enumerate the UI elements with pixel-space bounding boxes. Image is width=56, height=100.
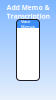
staticText: Transcription [6, 12, 49, 21]
staticText: Add Memo & [6, 3, 49, 12]
staticText: Voice Memos [21, 19, 35, 29]
